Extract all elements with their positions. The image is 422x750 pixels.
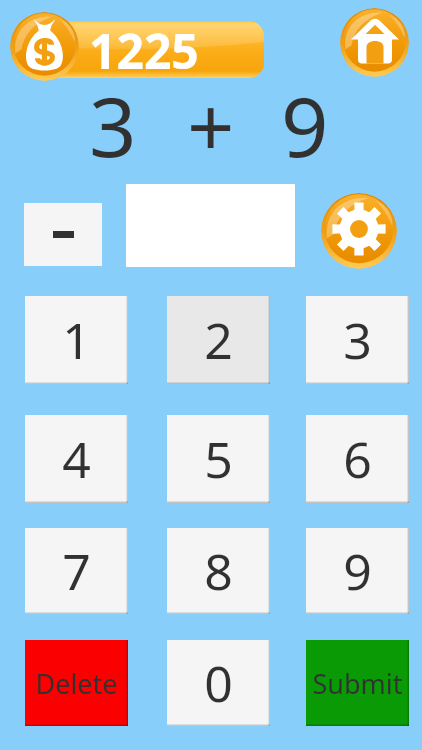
staticText: 8	[204, 537, 233, 605]
button[interactable]: 4	[25, 415, 128, 503]
staticText: 4	[62, 425, 91, 493]
button[interactable]: Settings	[321, 193, 397, 269]
button[interactable]: 9	[306, 528, 409, 614]
button[interactable]: 1	[25, 296, 128, 384]
staticText: 2	[204, 306, 233, 374]
staticText: 3	[89, 68, 137, 181]
button[interactable]: 3	[306, 296, 409, 384]
staticText: Delete	[35, 665, 118, 702]
staticText: 1	[62, 306, 91, 374]
staticText: +	[187, 68, 235, 181]
button[interactable]: 5	[167, 415, 270, 503]
button[interactable]: Minus	[24, 203, 102, 266]
staticText: Submit	[312, 665, 403, 702]
staticText: 5	[204, 425, 233, 493]
button[interactable]: 6	[306, 415, 409, 503]
staticText: 7	[62, 537, 91, 605]
staticText: 6	[343, 425, 372, 493]
staticText: 0	[204, 649, 233, 717]
staticText: 3	[343, 306, 372, 374]
button[interactable]: 0	[167, 640, 270, 726]
button[interactable]: 2	[167, 296, 270, 384]
button[interactable]: Delete	[25, 640, 128, 726]
button[interactable]: Home	[340, 8, 409, 77]
staticText: 1225	[89, 21, 199, 75]
staticText: 9	[343, 537, 372, 605]
button[interactable]: 7	[25, 528, 128, 614]
button[interactable]: 1225	[25, 21, 264, 78]
staticText: 9	[281, 68, 329, 181]
button[interactable]: Coins	[10, 12, 79, 81]
button[interactable]: 8	[167, 528, 270, 614]
button[interactable]: Submit	[306, 640, 409, 726]
